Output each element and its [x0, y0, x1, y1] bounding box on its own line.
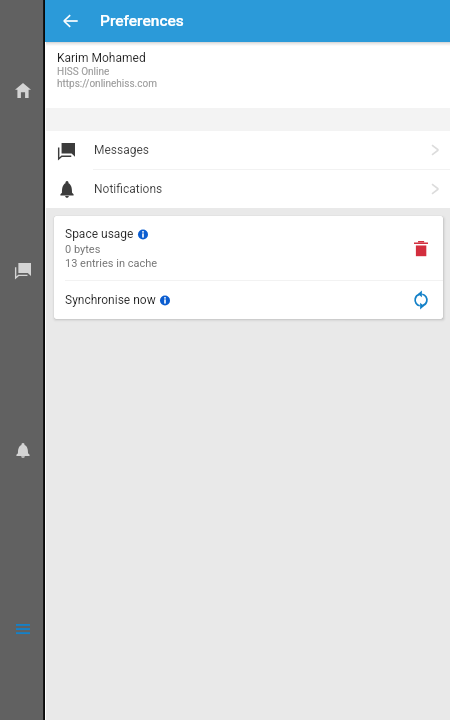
staticText: Preferences	[100, 12, 184, 30]
button[interactable]: Messages	[0, 251, 45, 289]
button[interactable]: Notifications	[45, 170, 450, 208]
button[interactable]: Notifications	[0, 431, 45, 469]
button[interactable]: Home	[0, 71, 45, 109]
staticText: Space usage	[65, 227, 134, 241]
staticText: 0 bytes	[65, 243, 101, 256]
staticText: Karim Mohamed	[57, 51, 146, 65]
button[interactable]: Synchronise	[409, 288, 433, 312]
staticText: Notifications	[94, 182, 431, 196]
button[interactable]: Messages	[45, 131, 450, 169]
staticText: Messages	[94, 143, 431, 157]
button[interactable]: Menu	[0, 610, 45, 648]
button[interactable]: Space usage	[54, 216, 443, 280]
staticText: Synchronise now	[65, 293, 156, 307]
staticText: HISS Online	[57, 66, 110, 78]
staticText: 13 entries in cache	[65, 257, 158, 270]
button[interactable]: Synchronise now	[54, 281, 443, 319]
button[interactable]: Back	[58, 9, 82, 33]
button[interactable]: Delete cache	[409, 236, 433, 260]
staticText: https://onlinehiss.com	[57, 78, 157, 90]
